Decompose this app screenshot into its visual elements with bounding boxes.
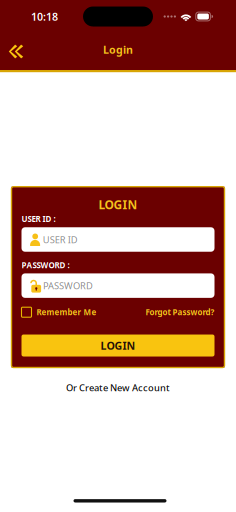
staticText: Login: [103, 42, 133, 57]
staticText: USER ID :: [21, 214, 55, 224]
button[interactable]: LOGIN: [21, 334, 214, 356]
staticText: LOGIN: [100, 338, 135, 353]
staticText: Or Create New Account: [66, 381, 170, 394]
staticText: LOGIN: [98, 197, 137, 213]
staticText: PASSWORD :: [21, 260, 69, 270]
staticText: USER ID: [43, 233, 78, 246]
staticText: PASSWORD: [43, 279, 93, 292]
staticText: Remember Me: [36, 307, 96, 317]
button[interactable]: Back: [0, 38, 31, 65]
button[interactable]: Remember Me: [21, 307, 96, 317]
button[interactable]: Forgot Password?: [145, 307, 214, 317]
staticText: Forgot Password?: [145, 307, 214, 317]
staticText: 10:18: [31, 9, 58, 24]
